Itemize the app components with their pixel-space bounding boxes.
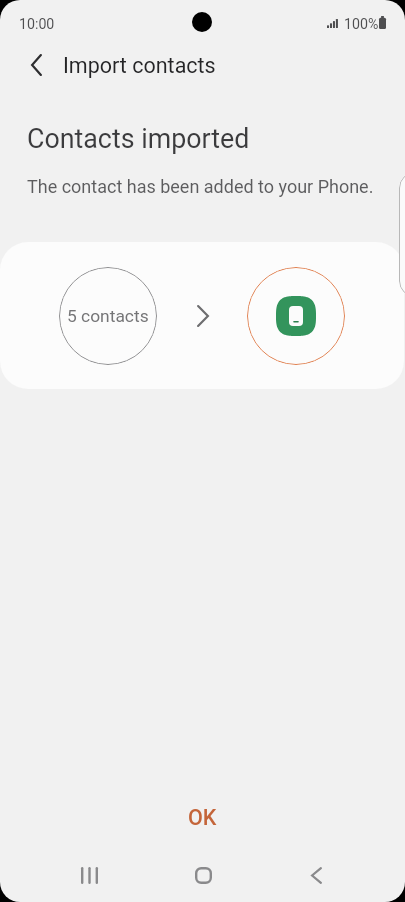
button[interactable]: Home xyxy=(179,851,227,899)
staticText: 10:00 xyxy=(19,16,55,33)
button[interactable] xyxy=(399,172,405,297)
staticText: Contacts imported xyxy=(27,123,250,154)
button[interactable]: OK xyxy=(156,795,249,840)
staticText: The contact has been added to your Phone… xyxy=(27,176,374,197)
staticText: 5 contacts xyxy=(67,306,149,326)
staticText: 100% xyxy=(344,16,379,33)
button[interactable]: 5 contacts xyxy=(0,242,404,389)
button[interactable]: Navigate up xyxy=(12,43,60,87)
staticText: OK xyxy=(188,805,217,830)
button[interactable]: Back xyxy=(292,851,340,899)
button[interactable]: Recents xyxy=(65,851,113,899)
staticText: Import contacts xyxy=(63,53,216,78)
